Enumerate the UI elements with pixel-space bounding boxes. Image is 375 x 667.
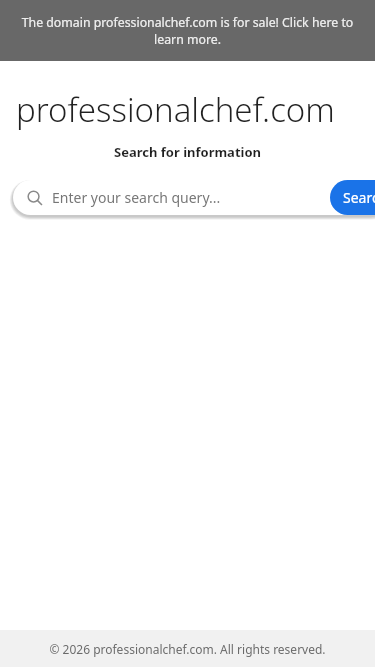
button[interactable]: The domain professionalchef.com is for s… <box>0 0 375 61</box>
other: Search <box>26 189 44 207</box>
button[interactable]: Search <box>13 180 375 215</box>
staticText: © 2026 professionalchef.com. All rights … <box>0 641 375 657</box>
staticText: The domain professionalchef.com is for s… <box>8 14 367 48</box>
staticText: Search for information <box>0 143 375 161</box>
staticText: professionalchef.com <box>16 87 335 132</box>
button[interactable]: Search <box>330 180 375 215</box>
staticText: Search <box>343 188 375 207</box>
staticText: Enter your search query... <box>52 188 375 207</box>
